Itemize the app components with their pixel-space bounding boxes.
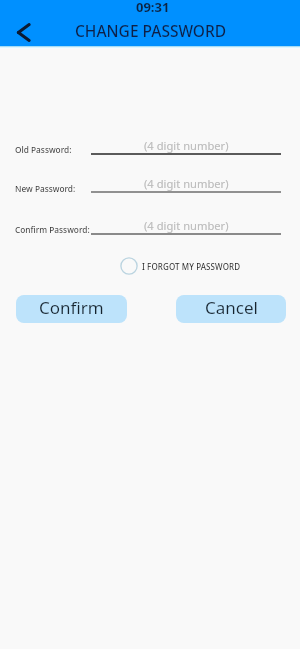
staticText: Cancel xyxy=(205,296,258,319)
staticText: 09:31 xyxy=(136,0,170,16)
button[interactable]: Cancel xyxy=(176,295,286,323)
staticText: (4 digit number) xyxy=(144,138,229,153)
staticText: CHANGE PASSWORD xyxy=(75,20,227,41)
staticText: Confirm Password: xyxy=(15,224,90,235)
staticText: Old Password: xyxy=(15,144,72,155)
button[interactable]: New Password: xyxy=(91,175,281,193)
button[interactable]: Confirm Password: xyxy=(91,217,281,235)
button[interactable]: Back xyxy=(10,19,36,45)
button[interactable]: I FORGOT MY PASSWORD xyxy=(120,257,241,275)
button[interactable]: Old Password: xyxy=(91,137,281,155)
staticText: I FORGOT MY PASSWORD xyxy=(142,261,241,272)
staticText: (4 digit number) xyxy=(144,176,229,191)
staticText: New Password: xyxy=(15,183,76,194)
staticText: Confirm xyxy=(39,296,104,319)
button[interactable]: Confirm xyxy=(16,295,127,323)
staticText: (4 digit number) xyxy=(144,218,229,233)
